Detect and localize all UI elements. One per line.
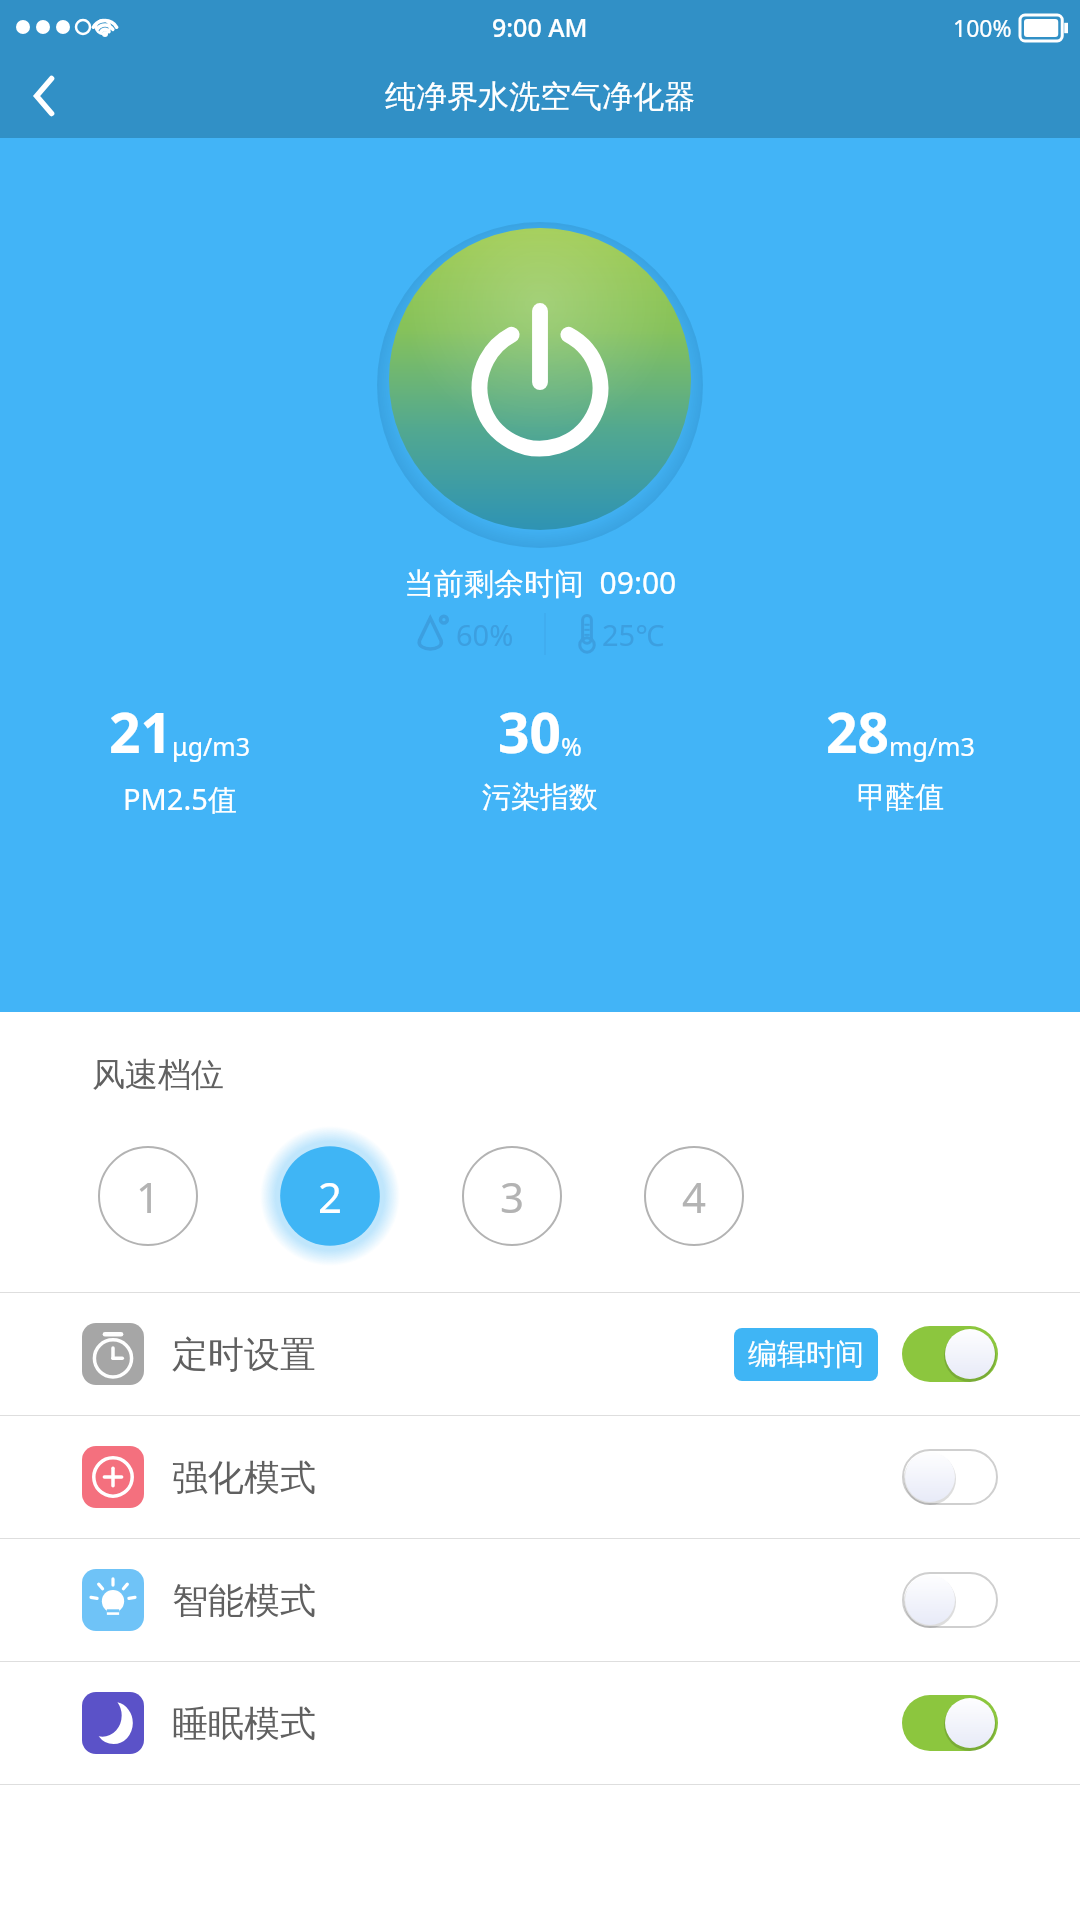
button[interactable]: Off bbox=[902, 1572, 998, 1628]
staticText: 污染指数 bbox=[482, 779, 598, 816]
staticText: 1 bbox=[136, 1168, 161, 1225]
button[interactable]: Back bbox=[0, 54, 90, 138]
staticText: 4 bbox=[682, 1168, 707, 1225]
staticText: 风速档位 bbox=[92, 1054, 224, 1096]
staticText: 甲醛值 bbox=[857, 779, 944, 816]
staticText: 60% bbox=[456, 615, 514, 654]
button[interactable]: On bbox=[902, 1326, 998, 1382]
button[interactable]: 睡眠模式 bbox=[0, 1662, 1080, 1784]
staticText: 纯净界水洗空气净化器 bbox=[385, 77, 695, 116]
staticText: 智能模式 bbox=[172, 1578, 316, 1623]
staticText: 25℃ bbox=[602, 615, 665, 654]
staticText: 100% bbox=[953, 12, 1012, 43]
staticText: % bbox=[561, 729, 582, 763]
staticText: 28 bbox=[826, 694, 889, 769]
staticText: 30 bbox=[498, 694, 561, 769]
staticText: 定时设置 bbox=[172, 1332, 316, 1377]
button[interactable]: 编辑时间 bbox=[734, 1328, 878, 1381]
button[interactable]: 强化模式 bbox=[0, 1416, 1080, 1538]
button[interactable]: Power bbox=[385, 224, 695, 534]
button[interactable]: 1 bbox=[92, 1140, 204, 1252]
button[interactable]: 定时设置 bbox=[0, 1293, 1080, 1415]
button[interactable]: 3 bbox=[456, 1140, 568, 1252]
button[interactable]: 4 bbox=[638, 1140, 750, 1252]
staticText: 编辑时间 bbox=[748, 1336, 864, 1373]
staticText: PM2.5值 bbox=[123, 779, 237, 819]
button[interactable]: On bbox=[902, 1695, 998, 1751]
staticText: 3 bbox=[500, 1168, 525, 1225]
button[interactable]: Off bbox=[902, 1449, 998, 1505]
staticText: 21 bbox=[109, 694, 172, 769]
staticText: 当前剩余时间 09:00 bbox=[404, 562, 677, 603]
staticText: 睡眠模式 bbox=[172, 1701, 316, 1746]
button[interactable]: 2 bbox=[274, 1140, 386, 1252]
staticText: mg/m3 bbox=[889, 729, 975, 763]
staticText: 9:00 AM bbox=[492, 10, 588, 44]
staticText: 2 bbox=[318, 1168, 343, 1225]
button[interactable]: 智能模式 bbox=[0, 1539, 1080, 1661]
staticText: μg/m3 bbox=[172, 729, 251, 763]
staticText: 强化模式 bbox=[172, 1455, 316, 1500]
